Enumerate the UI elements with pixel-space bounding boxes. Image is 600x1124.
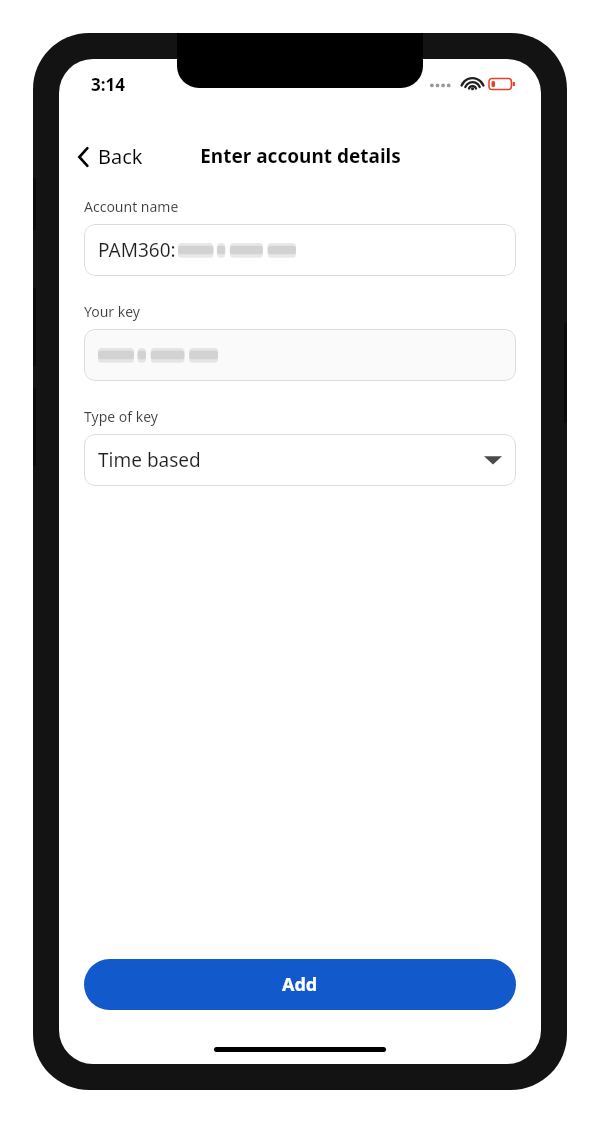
staticText: Type of key (84, 407, 158, 426)
staticText: Add (282, 972, 318, 997)
staticText: Time based (98, 447, 201, 473)
staticText: 3:14 (91, 73, 125, 96)
button[interactable] (84, 329, 516, 381)
button[interactable]: Back (69, 137, 151, 176)
staticText: Your key (84, 302, 140, 321)
staticText: Back (98, 143, 143, 170)
staticText: PAM360: (98, 237, 176, 263)
button[interactable]: Time based (84, 434, 516, 486)
button[interactable]: PAM360: (84, 224, 516, 276)
button[interactable]: Add (84, 959, 516, 1010)
staticText: Account name (84, 197, 179, 216)
staticText: Enter account details (200, 143, 401, 169)
